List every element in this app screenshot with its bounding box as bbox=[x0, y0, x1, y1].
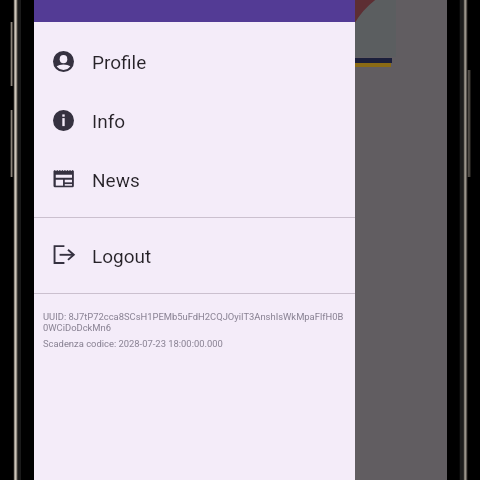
staticText: Profile bbox=[92, 51, 147, 73]
button[interactable]: Logout bbox=[34, 226, 355, 285]
button[interactable]: News bbox=[34, 150, 355, 209]
staticText: Logout bbox=[92, 245, 152, 267]
staticText: Scadenza codice: 2028-07-23 18:00:00.000 bbox=[43, 338, 223, 349]
other: Info bbox=[53, 110, 74, 131]
staticText: News bbox=[92, 169, 140, 191]
button[interactable]: Profile bbox=[34, 32, 355, 91]
staticText: UUID: 8J7tP72cca8SCsH1PEMb5uFdH2CQJOyiIT… bbox=[43, 311, 346, 333]
other: Logout bbox=[53, 245, 74, 266]
button[interactable]: Info bbox=[34, 91, 355, 150]
other: Profile bbox=[53, 51, 74, 72]
staticText: Info bbox=[92, 110, 126, 132]
other: News bbox=[53, 169, 74, 190]
